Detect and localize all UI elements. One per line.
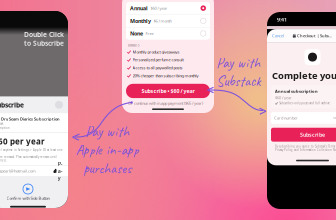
staticText: Cancel [272,33,284,38]
staticText: Checkout | Substack [297,33,333,38]
button[interactable]: Cancel [271,32,285,39]
staticText: $60 per year [0,136,45,147]
staticText: Card number [274,115,298,120]
staticText: Access to all paywalled posts [133,65,183,70]
staticText: Confirm with Side Button [6,195,49,201]
staticText: Personalized perfume consult [133,57,184,62]
staticText: annapearl@hotmail.com [0,168,36,173]
staticText: Subscribe • $60 / year [141,87,194,94]
staticText: subscription [0,126,10,130]
staticText: Double Click to Subscribe [24,30,64,48]
staticText: 20% cheaper than subscribing monthly [133,73,199,78]
staticText: Monthly product giveaways [133,49,180,54]
staticText: Monthly [130,17,151,24]
staticText: Cancel anytime in Settings > Apple ID at… [0,148,63,162]
staticText: $60 / year [275,95,292,100]
button[interactable]: Annual [126,2,210,14]
staticText: Annual [130,5,148,12]
staticText: Subscriber-only posts and full archive [279,101,330,105]
staticText: $60 / year [150,5,167,11]
staticText: Substack [0,122,3,125]
button[interactable]: Monthly [126,15,210,27]
staticText: Or continue with in-app payment ($65 / y… [128,101,203,106]
staticText: 9:41 [277,16,287,23]
staticText: Subscribe [300,131,325,138]
staticText: Free [145,31,153,36]
button[interactable]: Subscribe • $60 / year [126,84,210,98]
staticText: Pay [58,160,63,181]
staticText: Annual subscription [275,88,318,94]
staticText: MM/YY CVC [333,116,336,120]
button[interactable]: Subscribe [271,128,336,142]
staticText: Subscribe [0,100,24,109]
staticText: By subscribing you agree to Substack's T… [275,145,336,152]
staticText: Complete your subscription [272,69,336,81]
staticText: None [130,30,143,37]
button[interactable]: None [126,27,210,40]
staticText: $6 / month [153,18,171,23]
staticText: The Dry Seam Diaries Subscription [0,116,60,121]
staticText: BENEFITS [128,44,139,47]
staticText: Pay with Substack [216,53,260,90]
staticText: Pay with Apple in-app purchases [75,122,138,178]
